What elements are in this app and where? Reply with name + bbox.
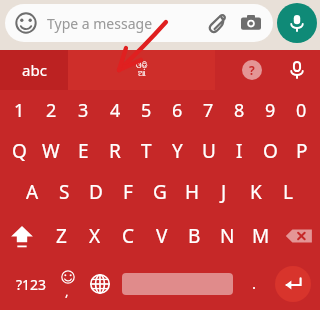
button[interactable]: Emoji [5,4,273,42]
staticText: 1 [14,98,25,123]
button[interactable]: 4 [99,90,131,130]
button[interactable]: Camera [241,13,261,33]
staticText: N [220,223,235,249]
button[interactable]: W [35,130,67,171]
staticText: U [202,138,216,164]
button[interactable]: Help [242,60,262,80]
button[interactable]: 9 [255,90,286,130]
button[interactable]: G [144,171,176,213]
button[interactable]: Q [3,130,35,171]
button[interactable]: E [67,130,99,171]
staticText: C [122,223,135,249]
staticText: 9 [265,98,276,123]
staticText: 8 [234,98,245,123]
staticText: J [221,179,227,205]
staticText: ?123 [16,275,47,294]
staticText: 2 [46,98,57,123]
button[interactable]: Y [162,130,193,171]
staticText: M [252,223,270,249]
button[interactable]: I [224,130,255,171]
button[interactable]: L [272,171,304,213]
button[interactable]: Shift [0,213,44,258]
button[interactable]: C [112,213,145,258]
button[interactable]: ଓଡ଼ି [68,50,215,90]
staticText: G [153,179,167,205]
button[interactable]: R [99,130,131,171]
staticText: D [89,179,103,205]
staticText: . [252,273,257,293]
staticText: ଓଡ଼ି [136,62,148,70]
staticText: , [65,282,69,300]
staticText: T [141,138,152,164]
staticText: O [263,138,278,164]
staticText: 5 [141,98,152,123]
staticText: K [250,179,262,205]
button[interactable]: V [145,213,178,258]
staticText: 7 [203,98,214,123]
staticText: F [123,179,133,205]
button[interactable]: Emoji [57,270,85,298]
button[interactable]: 0 [286,90,317,130]
staticText: abc [22,60,47,80]
staticText: 3 [78,98,89,123]
button[interactable]: 1 [3,90,35,130]
staticText: V [156,223,168,249]
button[interactable]: D [80,171,112,213]
button[interactable]: ?123 [8,272,54,296]
staticText: 6 [172,98,183,123]
staticText: E [78,138,89,164]
button[interactable]: U [193,130,224,171]
button[interactable]: Z [44,213,78,258]
button[interactable]: F [112,171,144,213]
button[interactable]: Voice message [277,3,317,43]
staticText: Type a message [47,14,153,33]
button[interactable]: . [243,272,265,294]
staticText: W [42,138,60,164]
staticText: B [188,223,201,249]
button[interactable]: P [286,130,317,171]
button[interactable]: B [178,213,211,258]
staticText: ଆ [138,70,146,78]
button[interactable]: Change language [88,272,112,296]
staticText: Q [12,138,27,164]
staticText: Z [56,223,67,249]
button[interactable]: K [240,171,272,213]
button[interactable]: S [48,171,80,213]
staticText: H [185,179,200,205]
staticText: R [109,138,121,164]
button[interactable]: Space [122,273,233,295]
staticText: 4 [110,98,121,123]
button[interactable]: 8 [224,90,255,130]
button[interactable]: J [208,171,240,213]
button[interactable]: abc [0,50,68,90]
button[interactable]: N [211,213,244,258]
button[interactable]: 6 [162,90,193,130]
button[interactable]: H [176,171,208,213]
button[interactable]: Voice input [286,59,308,81]
button[interactable]: X [78,213,112,258]
button[interactable]: 5 [131,90,162,130]
staticText: A [26,179,39,205]
button[interactable]: Attach [207,13,227,33]
staticText: 0 [296,98,307,123]
button[interactable]: 3 [67,90,99,130]
button[interactable]: Emoji [15,12,37,34]
button[interactable]: Backspace [277,213,320,258]
button[interactable]: Enter [275,266,311,302]
button[interactable]: 2 [35,90,67,130]
button[interactable]: 7 [193,90,224,130]
button[interactable]: O [255,130,286,171]
staticText: P [296,138,308,164]
button[interactable]: A [16,171,48,213]
staticText: I [236,138,243,164]
staticText: S [59,179,70,205]
staticText: ? [249,62,255,78]
staticText: X [89,223,101,249]
button[interactable]: T [131,130,162,171]
staticText: Y [172,138,183,164]
staticText: L [283,179,293,205]
button[interactable]: M [244,213,277,258]
